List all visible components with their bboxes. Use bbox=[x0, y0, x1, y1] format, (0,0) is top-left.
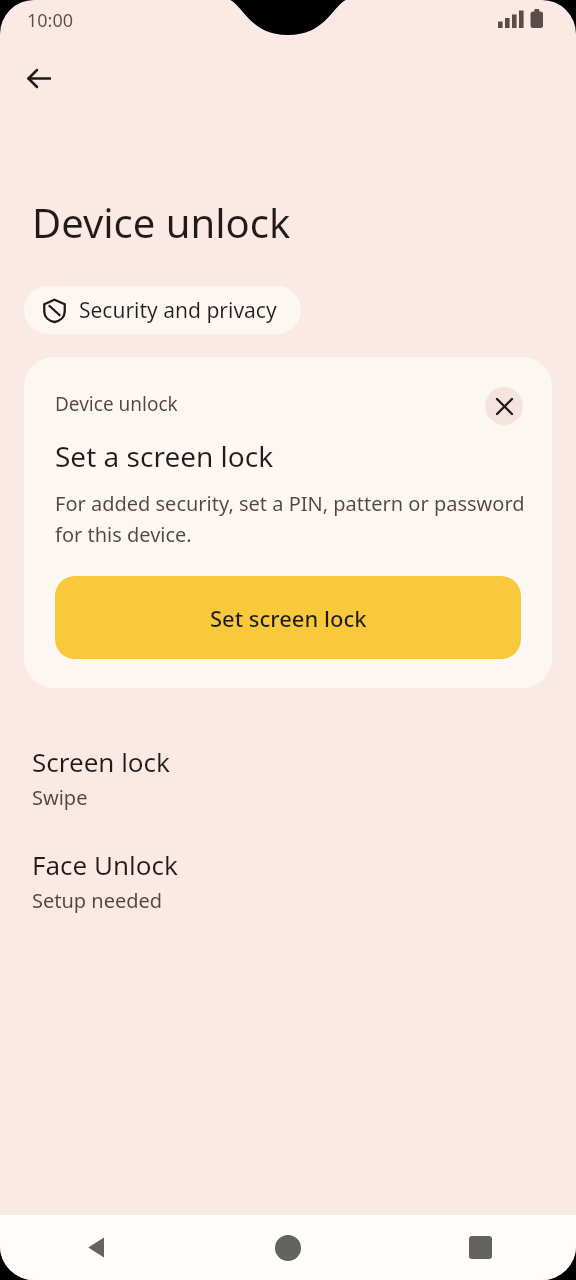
staticText: Device unlock bbox=[32, 195, 291, 249]
staticText: Swipe bbox=[32, 784, 88, 811]
button[interactable]: Dismiss bbox=[485, 387, 523, 425]
button[interactable]: Set screen lock bbox=[55, 576, 521, 659]
button[interactable]: Face Unlock bbox=[0, 847, 576, 914]
staticText: Set a screen lock bbox=[55, 437, 274, 475]
button[interactable]: Back bbox=[0, 1215, 192, 1280]
staticText: For added security, set a PIN, pattern o… bbox=[55, 490, 529, 547]
staticText: 10:00 bbox=[27, 8, 74, 33]
staticText: Setup needed bbox=[32, 887, 163, 914]
staticText: Device unlock bbox=[55, 391, 178, 417]
staticText: Screen lock bbox=[32, 744, 170, 779]
button[interactable]: Recent apps bbox=[384, 1215, 576, 1280]
button[interactable]: Screen lock bbox=[0, 744, 576, 811]
staticText: Security and privacy bbox=[79, 296, 277, 325]
staticText: Face Unlock bbox=[32, 847, 178, 882]
button[interactable]: Security and privacy bbox=[24, 286, 301, 334]
button[interactable]: Home bbox=[192, 1215, 384, 1280]
staticText: Set screen lock bbox=[210, 603, 367, 633]
button[interactable]: Back bbox=[15, 54, 63, 102]
